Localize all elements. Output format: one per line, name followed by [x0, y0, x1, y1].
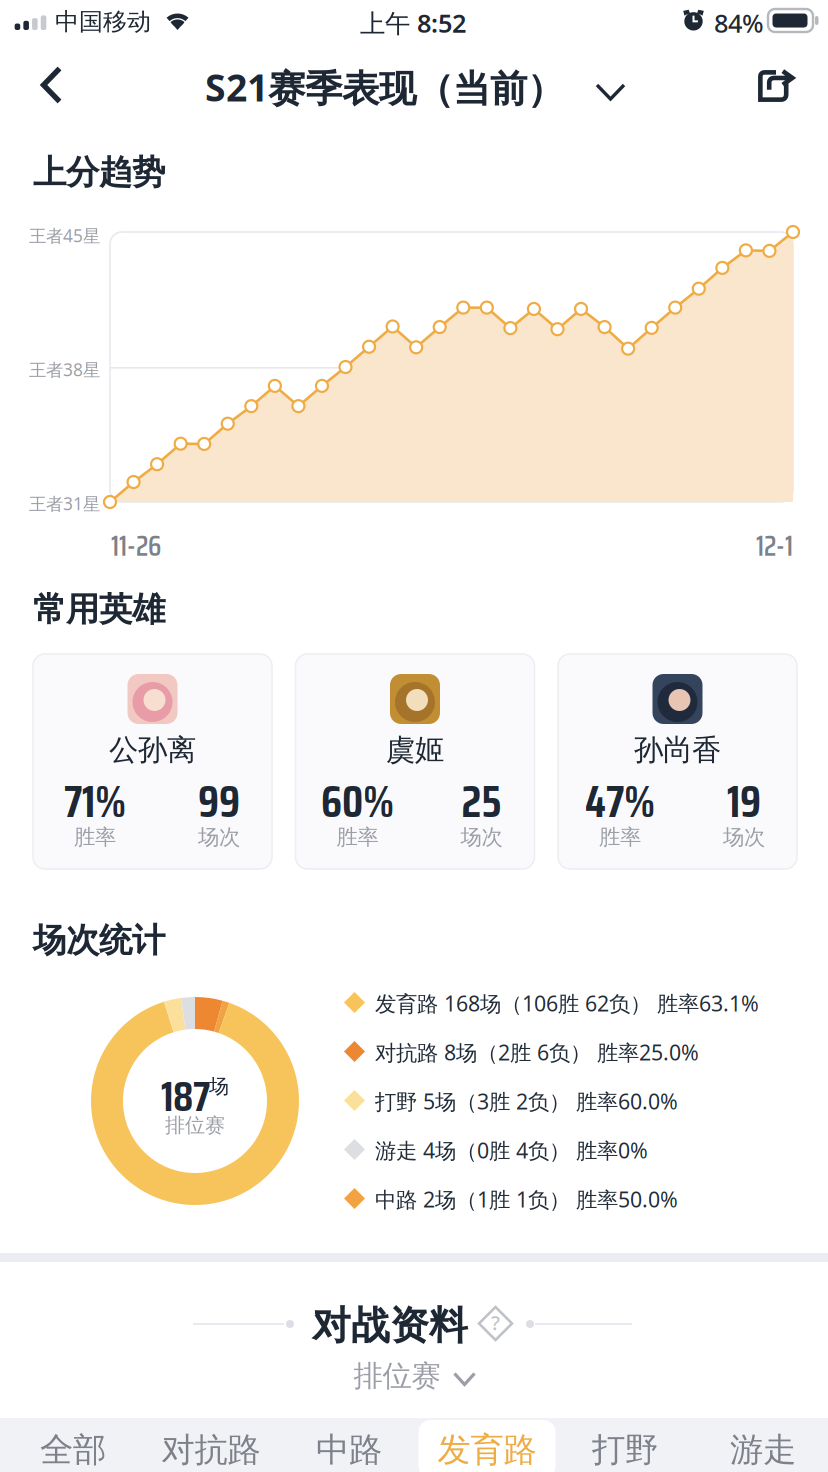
staticText: 发育路 168场（106胜 62负） 胜率63.1% — [375, 989, 759, 1017]
staticText: 游走 4场（0胜 4负） 胜率0% — [375, 1136, 648, 1164]
staticText: 公孙离 — [109, 732, 196, 768]
staticText: 11-26 — [111, 524, 161, 568]
staticText: 打野 — [592, 1429, 658, 1470]
button[interactable]: 全部 — [4, 1418, 142, 1472]
staticText: 发育路 — [437, 1429, 536, 1470]
staticText: 对战资料 — [312, 1302, 468, 1349]
staticText: 虞姬 — [386, 732, 444, 768]
staticText: 王者45星 — [29, 224, 100, 247]
staticText: 排位赛 — [165, 1113, 225, 1138]
staticText: 19 — [727, 767, 761, 836]
staticText: 中国移动 — [55, 7, 151, 36]
staticText: 胜率 — [336, 824, 378, 850]
staticText: 84% — [714, 6, 764, 40]
staticText: 王者31星 — [29, 492, 100, 515]
button[interactable]: 游走 — [694, 1418, 828, 1472]
staticText: 胜率 — [74, 824, 116, 850]
staticText: 排位赛 — [353, 1358, 440, 1394]
button[interactable]: Back — [0, 52, 103, 130]
button[interactable]: 孙尚香 — [558, 654, 797, 869]
staticText: 上分趋势 — [33, 152, 165, 193]
button[interactable]: 排位赛 — [0, 1353, 828, 1399]
staticText: 常用英雄 — [33, 589, 165, 630]
staticText: 上午 8:52 — [360, 6, 466, 40]
staticText: 孙尚香 — [634, 732, 721, 768]
staticText: 99 — [198, 767, 240, 836]
button[interactable]: 发育路 — [418, 1418, 556, 1472]
button[interactable]: 公孙离 — [33, 654, 272, 869]
staticText: 中路 — [316, 1429, 382, 1470]
staticText: S21赛季表现（当前） — [205, 62, 564, 112]
staticText: 对抗路 8场（2胜 6负） 胜率25.0% — [375, 1038, 699, 1066]
staticText: 60% — [321, 767, 394, 836]
button[interactable]: 打野 — [556, 1418, 694, 1472]
staticText: 对抗路 — [161, 1429, 260, 1470]
button[interactable]: 中路 — [280, 1418, 418, 1472]
button[interactable]: 对抗路 — [142, 1418, 280, 1472]
button[interactable]: 虞姬 — [295, 654, 534, 869]
staticText: ? — [491, 1309, 500, 1336]
staticText: 场次 — [198, 824, 240, 850]
staticText: 胜率 — [599, 824, 641, 850]
staticText: 打野 5场（3胜 2负） 胜率60.0% — [375, 1087, 678, 1115]
staticText: 场次 — [460, 824, 502, 850]
staticText: 全部 — [40, 1429, 106, 1470]
staticText: 游走 — [730, 1429, 796, 1470]
staticText: 187 — [161, 1064, 210, 1129]
staticText: 场次统计 — [33, 920, 165, 961]
staticText: 中路 2场（1胜 1负） 胜率50.0% — [375, 1185, 678, 1213]
staticText: 25 — [461, 767, 501, 836]
staticText: 71% — [64, 767, 126, 836]
staticText: 场 — [209, 1074, 229, 1099]
staticText: 47% — [585, 767, 655, 836]
staticText: 场次 — [723, 824, 765, 850]
button[interactable]: Share — [734, 52, 818, 130]
button[interactable]: S21赛季表现（当前） — [205, 52, 624, 130]
staticText: 12-1 — [756, 524, 793, 568]
staticText: 王者38星 — [29, 358, 100, 381]
